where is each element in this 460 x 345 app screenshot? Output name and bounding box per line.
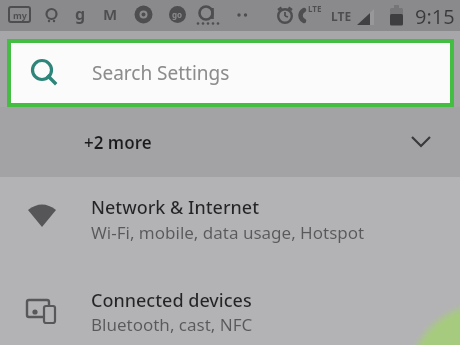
staticText: 9:15 (415, 3, 455, 30)
staticText: LTE (308, 3, 322, 14)
staticText: Connected devices (91, 288, 252, 313)
staticText: Search Settings (92, 60, 230, 86)
button[interactable]: Network & Internet (0, 177, 460, 270)
staticText: g (75, 3, 86, 25)
staticText: Bluetooth, cast, NFC (91, 313, 253, 336)
button[interactable]: Connected devices (0, 270, 460, 345)
button[interactable]: +2 more (0, 107, 460, 177)
staticText: Wi-Fi, mobile, data usage, Hotspot (91, 221, 365, 244)
staticText: M (103, 4, 118, 24)
staticText: go (172, 9, 183, 20)
button[interactable]: Search Settings (11, 43, 450, 103)
staticText: my (13, 9, 27, 21)
staticText: LTE (331, 8, 352, 24)
staticText: +2 more (84, 131, 152, 154)
staticText: Network & Internet (91, 195, 260, 220)
